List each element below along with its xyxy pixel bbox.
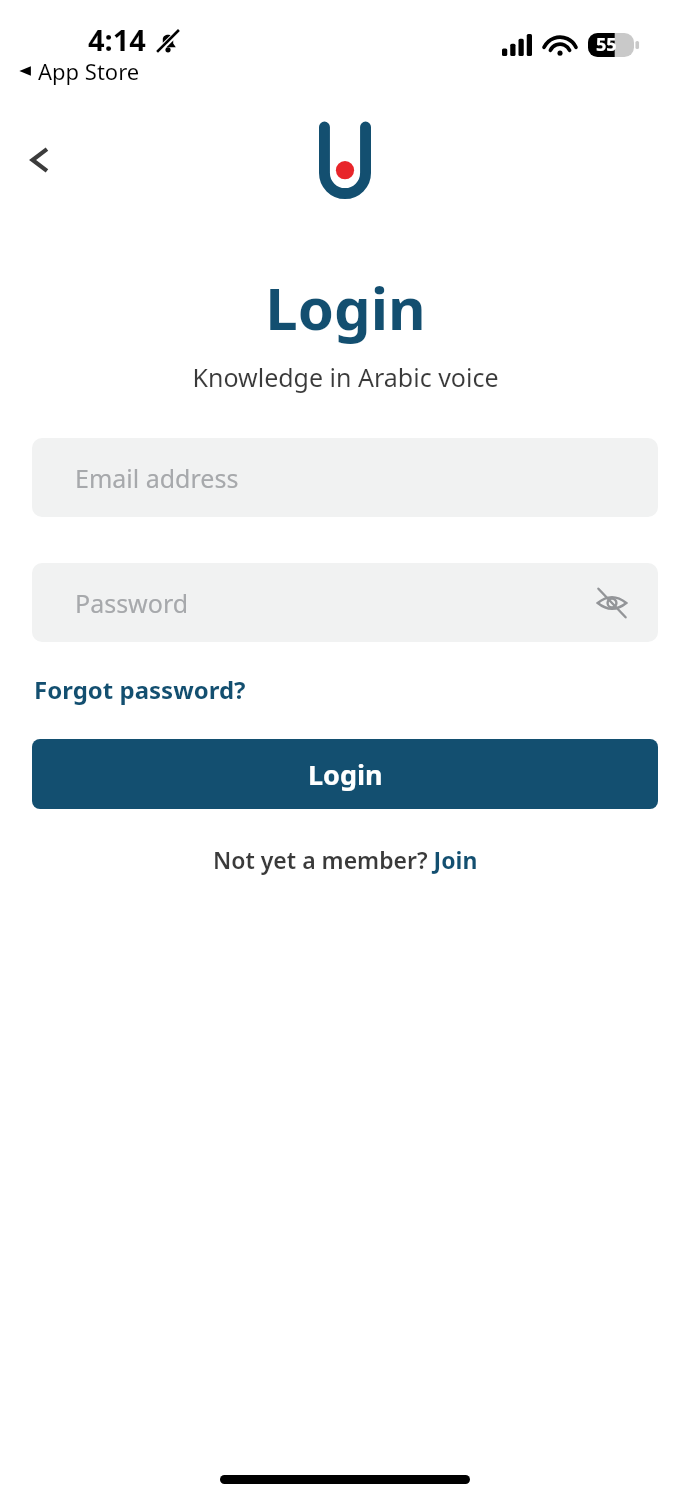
button[interactable]: Forgot password? [34, 673, 246, 706]
staticText: Forgot password? [34, 673, 246, 706]
button[interactable]: Not yet a member? Join [205, 839, 486, 880]
staticText: Email address [75, 461, 239, 495]
staticText: Password [75, 586, 189, 620]
button[interactable]: Back [12, 132, 68, 188]
button[interactable]: Login [32, 739, 658, 809]
button[interactable]: Password [32, 563, 658, 642]
staticText: 4:14 [88, 20, 146, 59]
staticText: App Store [38, 56, 140, 86]
staticText: Knowledge in Arabic voice [192, 360, 499, 394]
staticText: 55 [596, 32, 617, 57]
button[interactable]: Email address [32, 438, 658, 517]
staticText: Not yet a member? Join [213, 844, 478, 875]
staticText: Login [308, 756, 383, 793]
staticText: Login [265, 268, 426, 347]
button[interactable]: Show password [589, 580, 635, 626]
